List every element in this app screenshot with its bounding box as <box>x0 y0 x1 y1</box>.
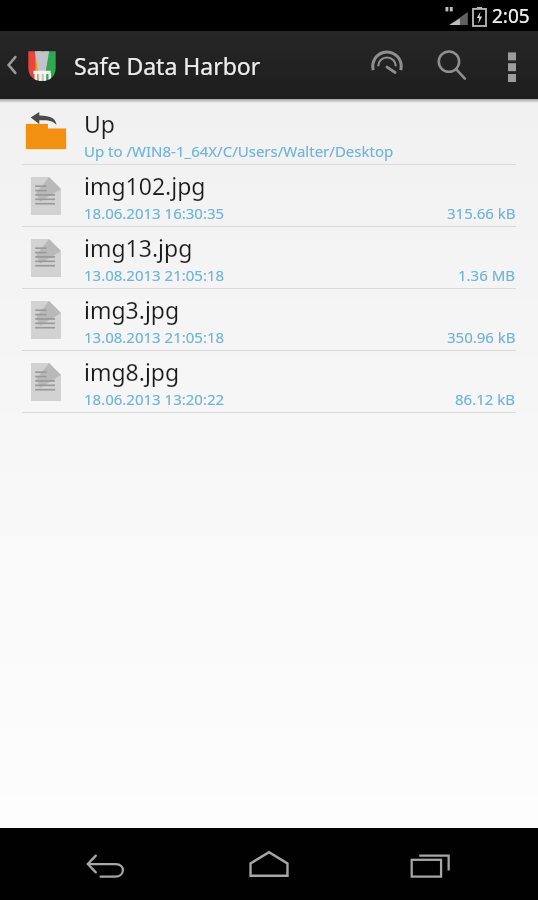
button[interactable]: img13.jpg <box>0 227 538 289</box>
staticText: 18.06.2013 13:20:22 <box>84 389 225 409</box>
staticText: img102.jpg <box>84 170 206 201</box>
staticText: Up <box>84 108 115 139</box>
staticText: img13.jpg <box>84 232 193 263</box>
staticText: 350.96 kB <box>447 327 516 347</box>
button[interactable]: Up <box>0 103 538 165</box>
staticText: 1.36 MB <box>458 265 516 285</box>
button[interactable]: More options <box>486 31 538 99</box>
staticText: 315.66 kB <box>447 203 516 223</box>
button[interactable]: Storage meter <box>356 31 418 99</box>
button[interactable]: Navigate up <box>0 39 64 91</box>
staticText: Safe Data Harbor <box>74 50 261 81</box>
staticText: 13.08.2013 21:05:18 <box>84 327 225 347</box>
button[interactable]: Back <box>52 828 162 900</box>
button[interactable]: Home <box>214 828 324 900</box>
staticText: 13.08.2013 21:05:18 <box>84 265 225 285</box>
button[interactable]: img8.jpg <box>0 351 538 413</box>
staticText: 2:05 <box>492 3 530 29</box>
staticText: img3.jpg <box>84 294 180 325</box>
button[interactable]: Recent apps <box>376 828 486 900</box>
button[interactable]: img3.jpg <box>0 289 538 351</box>
button[interactable]: img102.jpg <box>0 165 538 227</box>
staticText: img8.jpg <box>84 356 180 387</box>
button[interactable]: Search <box>418 31 486 99</box>
staticText: 18.06.2013 16:30:35 <box>84 203 225 223</box>
staticText: Up to /WIN8-1_64X/C/Users/Walter/Desktop <box>84 141 394 161</box>
staticText: 86.12 kB <box>455 389 516 409</box>
